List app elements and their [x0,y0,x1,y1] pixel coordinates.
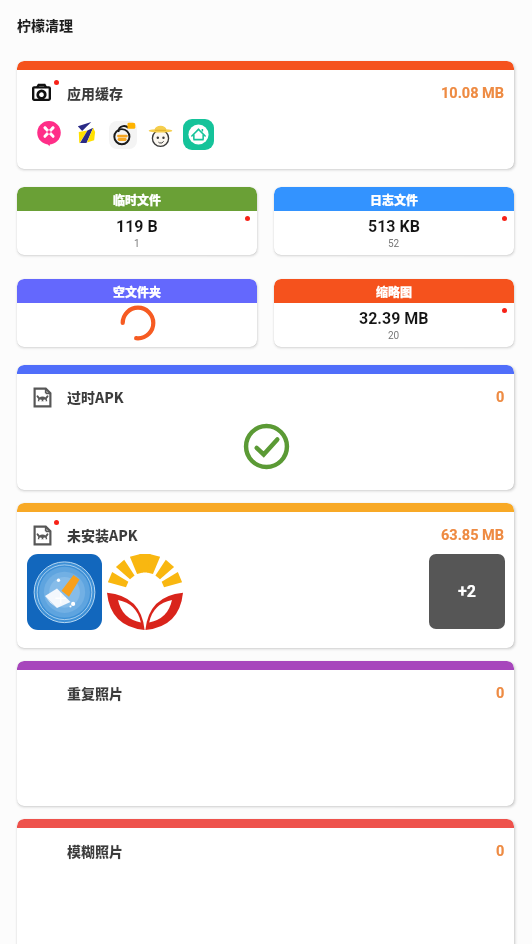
staticText: 10.08 MB [441,85,505,102]
button[interactable]: Clean app cache [17,61,514,169]
staticText: 日志文件 [370,191,419,208]
staticText: 1 [134,238,140,250]
staticText: 缩略图 [376,283,413,300]
staticText: 63.85 MB [441,527,505,544]
button[interactable]: 重复照片 [17,661,514,806]
other: APK file [33,387,52,408]
staticText: 空文件夹 [113,283,162,300]
staticText: 临时文件 [113,191,162,208]
staticText: 0 [496,843,505,860]
other: APK file [33,525,52,546]
button[interactable]: APK file [17,503,514,648]
staticText: 过时APK [67,387,124,407]
other: Clean app cache [32,84,51,101]
staticText: 重复照片 [67,683,123,703]
staticText: 应用缓存 [67,83,123,103]
staticText: 0 [496,389,505,406]
staticText: 0 [496,685,505,702]
button[interactable]: 空文件夹 [17,279,257,347]
staticText: 32.39 MB [359,309,429,328]
staticText: 52 [388,238,400,250]
button[interactable]: APK file [17,365,514,490]
button[interactable]: 缩略图 [274,279,514,347]
staticText: 20 [388,330,400,342]
staticText: 模糊照片 [67,841,123,861]
button[interactable]: 临时文件 [17,187,257,255]
staticText: 513 KB [368,217,420,236]
button[interactable]: 日志文件 [274,187,514,255]
button[interactable]: +2 [429,554,505,629]
staticText: 119 B [116,217,158,236]
staticText: 柠檬清理 [17,15,73,35]
button[interactable]: 模糊照片 [17,819,514,944]
staticText: 未安装APK [67,525,138,545]
staticText: +2 [458,582,476,601]
